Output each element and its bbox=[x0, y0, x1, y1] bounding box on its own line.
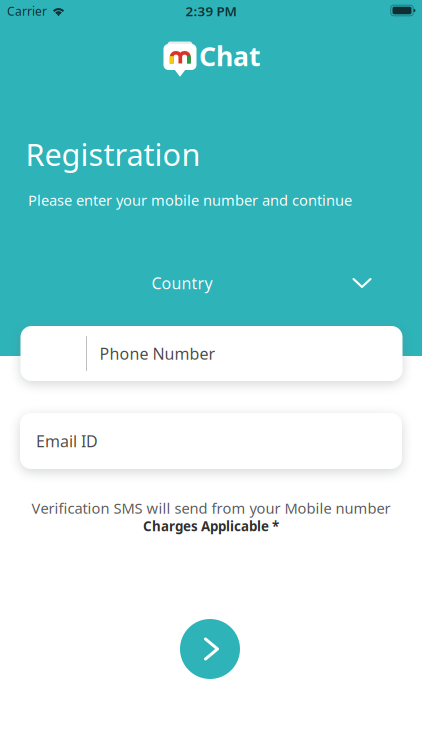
staticText: Verification SMS will send from your Mob… bbox=[31, 498, 390, 518]
button[interactable]: Phone Number bbox=[20, 326, 402, 381]
staticText: Email ID bbox=[36, 430, 98, 452]
staticText: Country bbox=[151, 272, 212, 294]
staticText: Phone Number bbox=[99, 343, 215, 364]
staticText: Carrier bbox=[7, 3, 47, 19]
staticText: 2:39 PM bbox=[185, 2, 236, 20]
staticText: Please enter your mobile number and cont… bbox=[28, 190, 352, 210]
staticText: Chat bbox=[199, 38, 261, 74]
button[interactable]: Country bbox=[0, 263, 422, 303]
staticText: Charges Applicable * bbox=[143, 517, 279, 535]
staticText: Registration bbox=[25, 134, 200, 174]
button[interactable]: Continue bbox=[180, 619, 240, 679]
button[interactable]: Email ID bbox=[20, 413, 402, 469]
